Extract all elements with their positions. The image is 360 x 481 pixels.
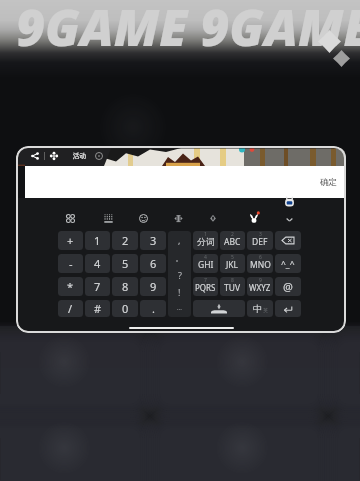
staticText: ?	[178, 269, 182, 281]
button[interactable]: 6	[140, 254, 166, 273]
button[interactable]: PQRS	[193, 277, 218, 296]
staticText: 4	[204, 254, 207, 261]
staticText: ···	[177, 305, 182, 313]
button[interactable]: 7	[85, 277, 110, 296]
button[interactable]: #	[85, 300, 110, 317]
staticText: !	[178, 286, 181, 298]
button[interactable]: Switch language	[247, 300, 273, 317]
staticText: 。	[175, 252, 184, 263]
button[interactable]: 4	[85, 254, 110, 273]
button[interactable]: 3	[140, 231, 166, 250]
button[interactable]: GHI	[193, 254, 218, 273]
staticText: /	[68, 301, 73, 316]
button[interactable]: +	[58, 231, 83, 250]
button[interactable]: Backspace	[275, 231, 301, 250]
button[interactable]: MNO	[247, 254, 273, 273]
staticText: #	[94, 301, 102, 316]
staticText: 7	[94, 279, 101, 294]
button[interactable]: 分词	[193, 231, 218, 250]
staticText: 9GAME 9GAME	[16, 0, 360, 61]
staticText: 2	[122, 233, 129, 248]
button[interactable]: Stickers	[246, 209, 262, 225]
staticText: *	[67, 279, 74, 294]
button[interactable]: /	[58, 300, 83, 317]
button[interactable]: ,	[168, 231, 191, 249]
staticText: 5	[231, 254, 234, 261]
button[interactable]: Share	[26, 146, 44, 166]
button[interactable]: !	[168, 283, 191, 300]
staticText: ^_^	[281, 258, 295, 270]
staticText: 9	[150, 279, 157, 294]
button[interactable]: Voice input	[205, 210, 221, 226]
button[interactable]: More	[45, 146, 63, 166]
button[interactable]: Keyboard	[100, 210, 116, 226]
staticText: 分词	[197, 236, 215, 247]
staticText: .	[152, 301, 155, 316]
staticText: 0	[122, 301, 129, 316]
staticText: 3	[259, 231, 262, 238]
button[interactable]: Enter	[275, 300, 301, 317]
staticText: @	[283, 279, 293, 294]
button[interactable]: 2	[112, 231, 138, 250]
button[interactable]: 确定	[320, 177, 337, 188]
staticText: JKL	[226, 259, 239, 271]
staticText: 5	[122, 256, 129, 271]
button[interactable]: DEF	[247, 231, 273, 250]
staticText: 3	[150, 233, 157, 248]
staticText: PQRS	[195, 282, 216, 293]
staticText: 6	[259, 254, 262, 261]
button[interactable]: ^_^	[275, 254, 301, 273]
staticText: 9	[259, 277, 262, 284]
button[interactable]: 0	[112, 300, 138, 317]
button[interactable]: *	[58, 277, 83, 296]
staticText: 8	[122, 279, 129, 294]
button[interactable]: Space	[193, 300, 245, 317]
staticText: DEF	[252, 236, 268, 248]
staticText: 中	[253, 303, 262, 314]
button[interactable]: 。	[168, 249, 191, 266]
button[interactable]: 活动	[73, 152, 86, 160]
staticText: 7	[204, 277, 207, 284]
staticText: +	[67, 233, 74, 248]
button[interactable]: ?	[168, 266, 191, 283]
button[interactable]: -	[58, 254, 83, 273]
staticText: 6	[150, 256, 157, 271]
button[interactable]: Hide keyboard	[281, 211, 297, 227]
staticText: 2	[231, 231, 234, 238]
staticText: MNO	[250, 259, 271, 271]
button[interactable]: 9	[140, 277, 166, 296]
button[interactable]: @	[275, 277, 301, 296]
button[interactable]: ABC	[220, 231, 245, 250]
staticText: ABC	[224, 236, 241, 248]
staticText: GHI	[198, 259, 214, 271]
button[interactable]: TUV	[220, 277, 245, 296]
button[interactable]: WXYZ	[247, 277, 273, 296]
button[interactable]: Apps	[62, 210, 78, 226]
staticText: 英	[263, 307, 268, 313]
button[interactable]: 8	[112, 277, 138, 296]
staticText: 1	[94, 233, 101, 248]
button[interactable]: Cursor	[170, 210, 186, 226]
staticText: ,	[178, 234, 181, 246]
staticText: 4	[94, 256, 101, 271]
button[interactable]: Emoji	[135, 210, 151, 226]
button[interactable]: Help	[92, 149, 106, 163]
button[interactable]: 5	[112, 254, 138, 273]
button[interactable]: JKL	[220, 254, 245, 273]
staticText: -	[69, 256, 73, 271]
button[interactable]: 1	[85, 231, 110, 250]
staticText: TUV	[224, 282, 241, 294]
staticText: 8	[231, 277, 234, 284]
button[interactable]: .	[140, 300, 166, 317]
staticText: WXYZ	[249, 282, 271, 293]
staticText: 1	[204, 231, 207, 238]
button[interactable]: ···	[168, 300, 191, 317]
